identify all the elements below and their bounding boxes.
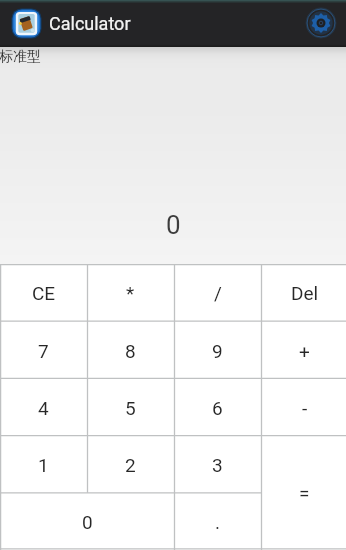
button[interactable]: 8 <box>87 322 174 379</box>
button[interactable]: * <box>87 264 174 322</box>
button[interactable]: 3 <box>174 436 261 493</box>
button[interactable]: Settings <box>301 3 341 43</box>
button[interactable]: 1 <box>0 436 87 493</box>
staticText: / <box>214 282 222 304</box>
staticText: 3 <box>212 454 223 476</box>
staticText: Del <box>291 282 319 304</box>
button[interactable]: 6 <box>174 379 261 436</box>
staticText: Calculator <box>49 13 131 34</box>
button[interactable]: + <box>263 322 346 379</box>
button[interactable]: = <box>263 436 346 550</box>
button[interactable]: 4 <box>0 379 87 436</box>
staticText: * <box>126 282 135 304</box>
button[interactable]: 7 <box>0 322 87 379</box>
staticText: 6 <box>212 397 223 419</box>
staticText: 0 <box>82 511 93 533</box>
staticText: CE <box>32 282 56 304</box>
button[interactable]: - <box>263 379 346 436</box>
staticText: 7 <box>38 340 49 362</box>
staticText: . <box>215 511 221 533</box>
button[interactable]: 2 <box>87 436 174 493</box>
staticText: = <box>299 482 310 504</box>
button[interactable]: 5 <box>87 379 174 436</box>
button[interactable]: . <box>174 493 261 550</box>
staticText: 4 <box>38 397 49 419</box>
staticText: 5 <box>125 397 136 419</box>
staticText: + <box>299 340 310 362</box>
button[interactable]: CE <box>0 264 87 322</box>
button[interactable]: / <box>174 264 261 322</box>
staticText: 1 <box>38 454 49 476</box>
staticText: 0 <box>166 210 181 240</box>
staticText: 标准型 <box>0 48 41 66</box>
staticText: 8 <box>125 340 136 362</box>
button[interactable]: Del <box>263 264 346 322</box>
staticText: - <box>302 397 308 419</box>
staticText: 9 <box>212 340 223 362</box>
staticText: 2 <box>125 454 136 476</box>
button[interactable]: 9 <box>174 322 261 379</box>
button[interactable]: 0 <box>0 493 174 550</box>
